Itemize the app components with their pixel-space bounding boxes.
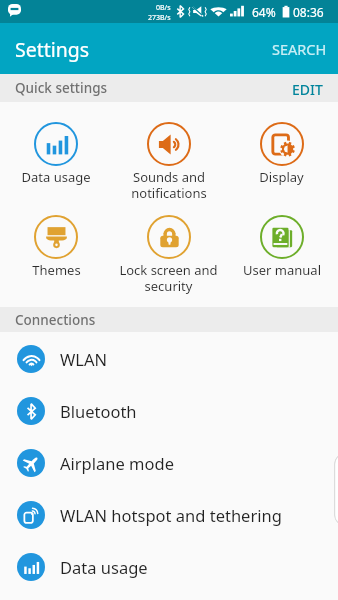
staticText: Sounds and notifications — [131, 168, 207, 201]
button[interactable]: Airplane mode — [0, 436, 338, 488]
staticText: SEARCH — [272, 39, 327, 59]
staticText: 273B/s — [148, 13, 171, 23]
staticText: EDIT — [292, 80, 323, 96]
button[interactable]: Themes — [0, 195, 112, 307]
staticText: Connections — [15, 311, 96, 329]
staticText: Themes — [32, 261, 81, 279]
staticText: Quick settings — [15, 79, 108, 97]
staticText: 08:36 — [293, 4, 324, 20]
staticText: Data usage — [21, 168, 91, 186]
staticText: Airplane mode — [60, 452, 174, 474]
staticText: 64% — [252, 4, 276, 20]
staticText: Settings — [15, 36, 90, 63]
button[interactable]: WLAN — [0, 332, 338, 384]
button[interactable]: EDIT — [277, 74, 338, 102]
button[interactable]: Sounds and notifications — [112, 102, 225, 195]
button[interactable]: Lock screen and security — [112, 195, 225, 307]
staticText: Display — [259, 168, 304, 186]
other: Scroll — [334, 453, 338, 526]
staticText: WLAN — [60, 348, 108, 370]
button[interactable]: SEARCH — [258, 26, 338, 72]
staticText: Data usage — [60, 556, 148, 578]
button[interactable]: WLAN hotspot and tethering — [0, 488, 338, 540]
button[interactable]: Display — [225, 102, 338, 195]
staticText: WLAN hotspot and tethering — [60, 504, 282, 526]
staticText: Bluetooth — [60, 400, 137, 422]
staticText: 0B/s — [156, 3, 171, 13]
staticText: User manual — [243, 261, 321, 279]
button[interactable]: User manual — [225, 195, 338, 307]
staticText: Lock screen and security — [119, 261, 218, 294]
button[interactable]: Data usage — [0, 102, 112, 195]
button[interactable]: Data usage — [0, 540, 338, 592]
button[interactable]: Bluetooth — [0, 384, 338, 436]
